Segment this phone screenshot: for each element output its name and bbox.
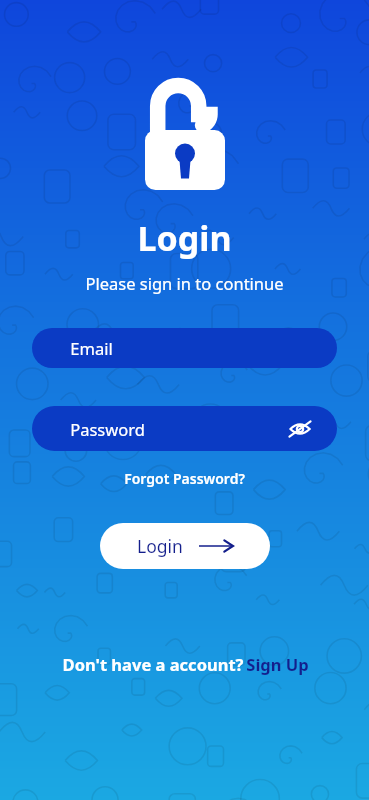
staticText: Don't have a account? — [60, 653, 246, 675]
staticText: Forgot Password? — [124, 469, 245, 488]
button[interactable]: Password — [32, 406, 337, 451]
button[interactable]: Login — [100, 523, 270, 569]
staticText: Sign Up — [246, 653, 309, 675]
staticText: Please sign in to continue — [85, 272, 284, 294]
staticText: Login — [137, 215, 232, 261]
staticText: Password — [70, 418, 145, 440]
button[interactable]: Forgot Password? — [114, 465, 255, 492]
staticText: Login — [137, 534, 183, 558]
staticText: Email — [70, 337, 113, 359]
button[interactable]: Show password — [287, 416, 313, 442]
button[interactable]: Email — [32, 328, 337, 368]
button[interactable]: Don't have a account? — [52, 647, 317, 681]
